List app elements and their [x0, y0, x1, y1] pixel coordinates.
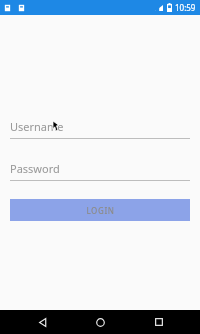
button[interactable]: LOGIN [10, 199, 190, 221]
staticText: 10:59 [175, 2, 196, 13]
button[interactable]: Home [83, 310, 117, 334]
button[interactable]: Recent apps [142, 310, 176, 334]
staticText: LOGIN [86, 205, 115, 216]
staticText: Password [10, 161, 60, 176]
button[interactable]: Password [10, 161, 190, 181]
button[interactable]: Username [10, 119, 190, 139]
button[interactable]: Back [25, 310, 59, 334]
staticText: Username [10, 119, 64, 134]
